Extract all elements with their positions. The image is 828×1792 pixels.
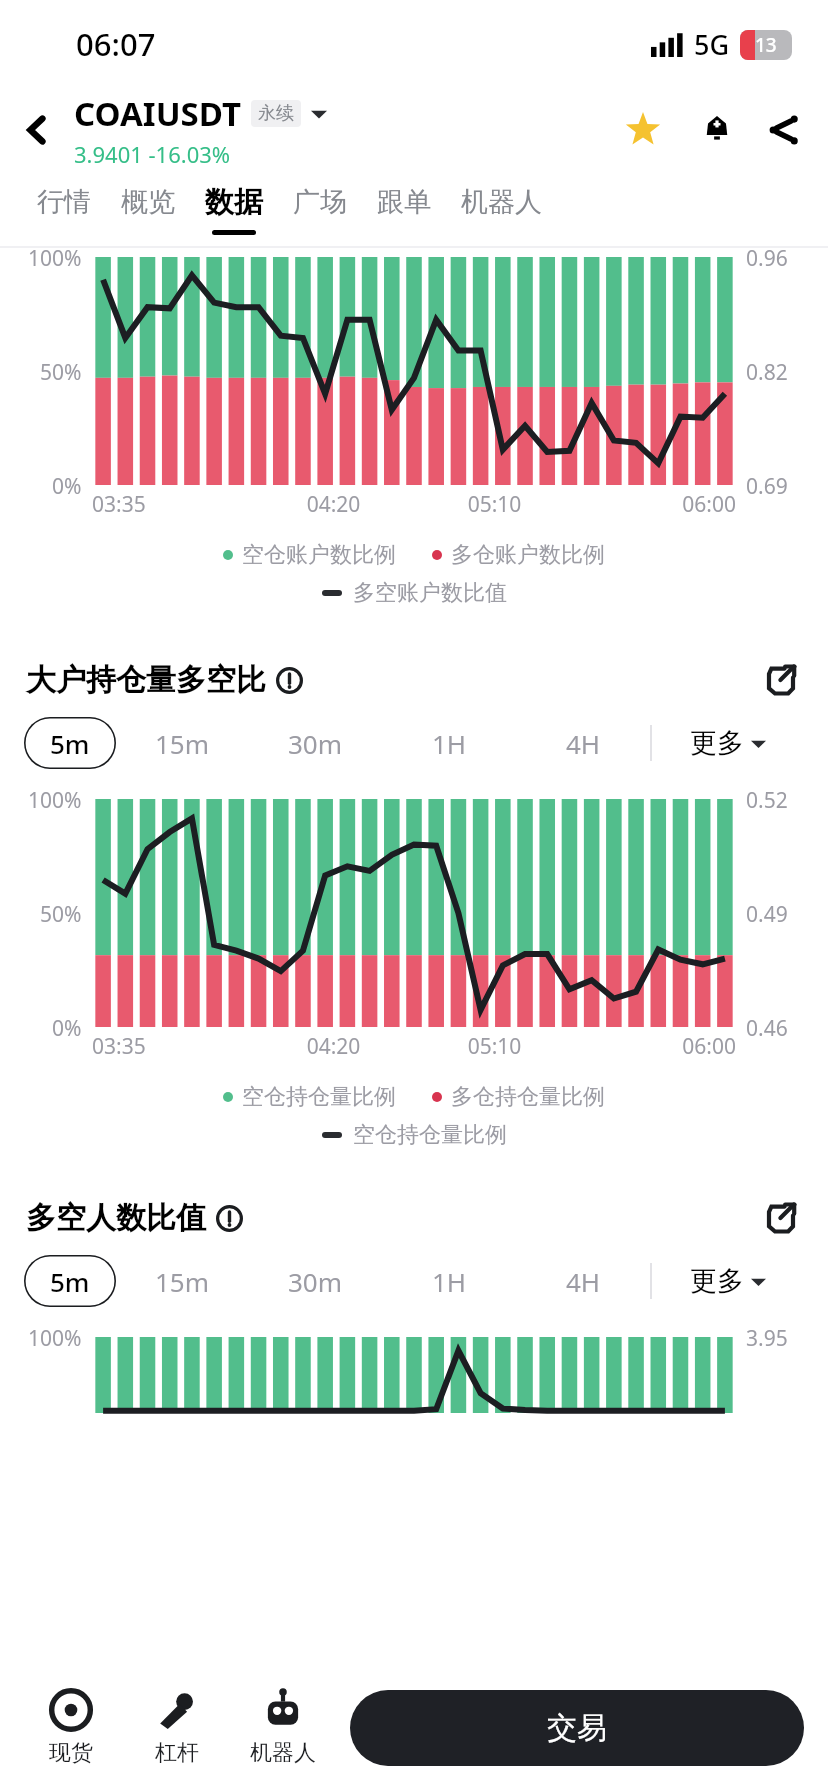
staticText: 空仓持仓量比例 [353,1121,507,1149]
button[interactable]: 机器人 [230,1689,336,1767]
staticText: 多空账户数比值 [353,579,507,607]
staticText: 30m [288,726,343,761]
button[interactable]: Back [0,88,74,172]
staticText: 06:00 [575,490,736,519]
button[interactable]: 15m [116,1255,249,1307]
button[interactable]: 概览 [106,172,190,246]
staticText: 0.49 [746,900,788,929]
staticText: 行情 [37,185,91,219]
staticText: 03:35 [92,1032,253,1061]
staticText: 4H [566,1264,601,1299]
staticText: 05:10 [414,1032,575,1061]
button[interactable]: Share [754,93,814,167]
button[interactable]: 广场 [278,172,362,246]
staticText: 04:20 [253,490,414,519]
staticText: 4H [566,726,601,761]
button[interactable]: Alerts [680,93,754,167]
staticText: 5G [694,26,730,63]
staticText: 5m [50,726,90,761]
staticText: 3.95 [746,1324,788,1353]
staticText: 跟单 [377,185,431,219]
button[interactable]: 交易 [350,1690,804,1766]
button[interactable]: More symbols [311,106,327,122]
button[interactable]: 跟单 [362,172,446,246]
button[interactable]: 现货 [18,1689,124,1767]
button[interactable]: 4H [516,1255,650,1307]
staticText: 100% [28,1324,82,1353]
staticText: 更多 [690,1264,744,1298]
staticText: 永续 [258,102,294,125]
staticText: 0.82 [746,358,788,387]
button[interactable]: 更多 [652,1255,804,1307]
staticText: 多仓持仓量比例 [451,1083,605,1111]
staticText: 50% [40,358,82,387]
staticText: 1H [432,1264,467,1299]
staticText: 06:07 [76,23,156,65]
staticText: 更多 [690,726,744,760]
button[interactable]: 30m [249,1255,382,1307]
staticText: 15m [155,1264,210,1299]
staticText: 交易 [547,1709,607,1747]
staticText: 多空人数比值 [26,1199,206,1237]
staticText: 空仓持仓量比例 [242,1083,396,1111]
staticText: 15m [155,726,210,761]
staticText: 05:10 [414,490,575,519]
staticText: 1H [432,726,467,761]
staticText: 概览 [121,185,175,219]
button[interactable]: 行情 [22,172,106,246]
button[interactable]: 5m [24,717,116,769]
button[interactable]: 1H [382,717,516,769]
staticText: 100% [28,244,82,273]
staticText: 杠杆 [155,1739,199,1767]
staticText: 数据 [205,184,263,221]
button[interactable]: 5m [24,1255,116,1307]
staticText: 现货 [49,1739,93,1767]
staticText: 广场 [293,185,347,219]
staticText: 04:20 [253,1032,414,1061]
button[interactable]: Info [276,667,303,694]
button[interactable]: Open full screen [760,659,802,701]
staticText: 大户持仓量多空比 [26,661,266,699]
staticText: 空仓账户数比例 [242,541,396,569]
button[interactable]: Favourite [606,93,680,167]
staticText: 机器人 [250,1739,316,1767]
staticText: 3.9401 -16.03% [74,139,231,169]
staticText: 100% [28,786,82,815]
staticText: 06:00 [575,1032,736,1061]
button[interactable]: Info [216,1205,243,1232]
staticText: 30m [288,1264,343,1299]
staticText: 5m [50,1264,90,1299]
button[interactable]: 杠杆 [124,1689,230,1767]
staticText: 0.96 [746,244,788,273]
button[interactable]: 30m [249,717,382,769]
button[interactable]: 4H [516,717,650,769]
staticText: 0% [52,1014,82,1043]
button[interactable]: 更多 [652,717,804,769]
staticText: 50% [40,900,82,929]
staticText: 0.69 [746,472,788,501]
button[interactable]: 1H [382,1255,516,1307]
staticText: 0.52 [746,786,788,815]
staticText: COAIUSDT [74,91,241,136]
staticText: 多仓账户数比例 [451,541,605,569]
button[interactable]: 15m [116,717,249,769]
button[interactable]: Open full screen [760,1197,802,1239]
staticText: 机器人 [461,185,542,219]
button[interactable]: 机器人 [446,172,557,246]
staticText: 0.46 [746,1014,788,1043]
staticText: 13 [755,32,777,58]
staticText: 03:35 [92,490,253,519]
button[interactable]: 数据 [190,172,278,246]
staticText: 0% [52,472,82,501]
